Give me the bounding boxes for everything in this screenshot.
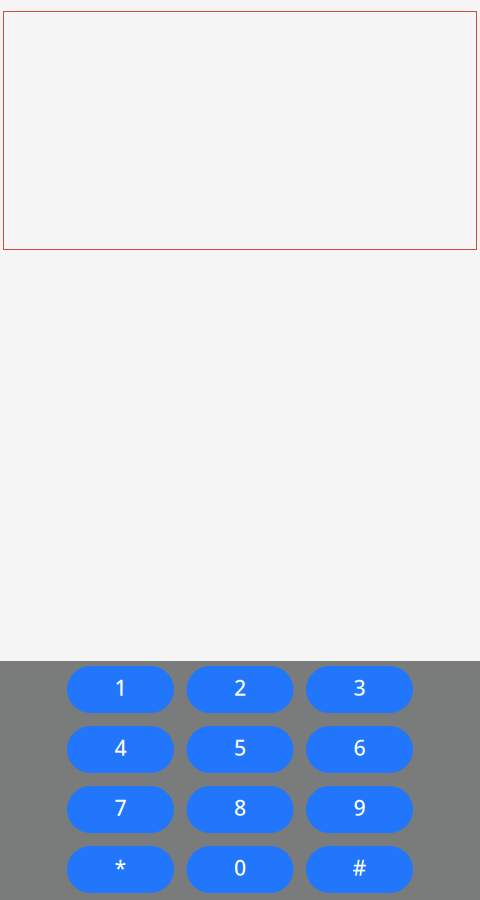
button[interactable]: Pound bbox=[306, 846, 413, 893]
button[interactable]: Star bbox=[67, 846, 174, 893]
staticText: 5 bbox=[234, 733, 246, 762]
staticText: 4 bbox=[114, 733, 126, 762]
staticText: 9 bbox=[353, 793, 365, 822]
button[interactable]: 2 bbox=[186, 666, 293, 713]
button[interactable]: 5 bbox=[186, 726, 293, 773]
button[interactable]: 8 bbox=[186, 786, 293, 833]
staticText: # bbox=[352, 853, 366, 882]
staticText: 8 bbox=[234, 793, 246, 822]
staticText: 2 bbox=[234, 673, 246, 702]
button[interactable]: 4 bbox=[67, 726, 174, 773]
button[interactable]: 0 bbox=[186, 846, 293, 893]
staticText: 7 bbox=[114, 793, 126, 822]
staticText: * bbox=[114, 853, 126, 882]
button[interactable]: 6 bbox=[306, 726, 413, 773]
staticText: 3 bbox=[353, 673, 365, 702]
staticText: 1 bbox=[114, 673, 126, 702]
staticText: 6 bbox=[353, 733, 365, 762]
button[interactable]: 9 bbox=[306, 786, 413, 833]
button[interactable]: 3 bbox=[306, 666, 413, 713]
staticText: 0 bbox=[234, 853, 246, 882]
button[interactable]: 1 bbox=[67, 666, 174, 713]
button[interactable]: 7 bbox=[67, 786, 174, 833]
